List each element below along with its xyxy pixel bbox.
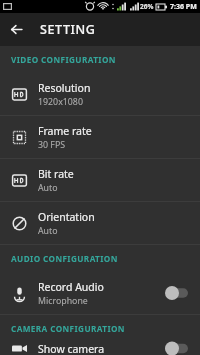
staticText: Bit rate (38, 167, 74, 181)
button[interactable]: Bit rate (0, 159, 200, 201)
button[interactable]: Back (0, 13, 33, 46)
staticText: Auto (38, 182, 58, 194)
staticText: Auto (38, 225, 58, 237)
staticText: Show camera (38, 342, 105, 355)
button[interactable]: Toggle Record Audio (154, 272, 200, 314)
staticText: 30 FPS (38, 139, 66, 151)
staticText: Record Audio (38, 280, 104, 294)
button[interactable]: Resolution (0, 73, 200, 115)
button[interactable]: Frame rate (0, 116, 200, 158)
button[interactable]: Toggle Show camera (154, 342, 200, 355)
staticText: CAMERA CONFIGURATION (11, 323, 125, 334)
button[interactable]: Record Audio (0, 272, 200, 314)
staticText: AUDIO CONFIGURATION (11, 253, 118, 264)
staticText: 7:36 PM (170, 2, 197, 12)
staticText: 1920x1080 (38, 96, 83, 108)
staticText: SETTING (40, 21, 96, 38)
staticText: Microphone (38, 295, 88, 307)
staticText: Resolution (38, 81, 91, 95)
staticText: Orientation (38, 210, 95, 224)
staticText: VIDEO CONFIGURATION (11, 54, 116, 65)
button[interactable]: Orientation (0, 202, 200, 244)
staticText: Frame rate (38, 124, 92, 138)
staticText: 26% (140, 2, 154, 11)
button[interactable]: Show camera (0, 342, 200, 355)
